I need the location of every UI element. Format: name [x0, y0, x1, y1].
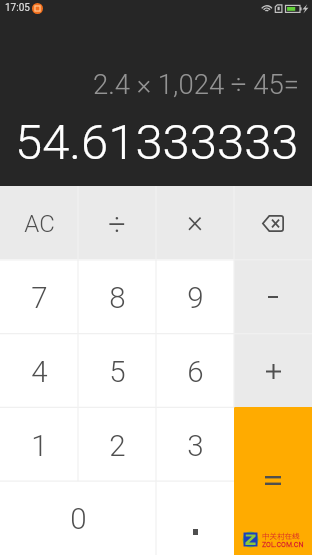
button[interactable]: 9: [156, 259, 234, 333]
button[interactable]: 8: [78, 259, 156, 333]
button[interactable]: 6: [156, 333, 234, 407]
staticText: 6: [187, 355, 204, 390]
staticText: ZOL.COM.CN: [262, 541, 304, 549]
button[interactable]: 1: [0, 407, 78, 481]
staticText: 5: [109, 355, 126, 390]
button[interactable]: Decimal point: [156, 481, 234, 555]
button[interactable]: ÷: [78, 186, 156, 259]
button[interactable]: 3: [156, 407, 234, 481]
staticText: 17:05: [5, 2, 30, 14]
button[interactable]: 0: [0, 481, 156, 555]
staticText: 2: [109, 429, 126, 464]
staticText: 中关村在线: [262, 530, 300, 541]
button[interactable]: AC: [0, 186, 78, 259]
staticText: 0: [70, 502, 87, 537]
button[interactable]: Plus: [234, 333, 312, 407]
staticText: ×: [187, 204, 203, 240]
button[interactable]: 5: [78, 333, 156, 407]
staticText: 8: [109, 281, 126, 316]
staticText: 4: [31, 355, 48, 390]
button[interactable]: 4: [0, 333, 78, 407]
staticText: AC: [24, 210, 55, 238]
staticText: 2.4 × 1,024 ÷ 45=: [93, 68, 299, 100]
button[interactable]: Backspace: [234, 186, 312, 259]
staticText: 1: [31, 429, 48, 464]
button[interactable]: Equals: [234, 407, 312, 555]
staticText: 7: [31, 281, 48, 316]
staticText: ÷: [108, 207, 126, 243]
button[interactable]: 2: [78, 407, 156, 481]
staticText: 3: [187, 429, 204, 464]
button[interactable]: Minus: [234, 259, 312, 333]
staticText: 54.61333333: [15, 114, 299, 171]
button[interactable]: ×: [156, 186, 234, 259]
staticText: 9: [187, 281, 204, 316]
button[interactable]: 7: [0, 259, 78, 333]
